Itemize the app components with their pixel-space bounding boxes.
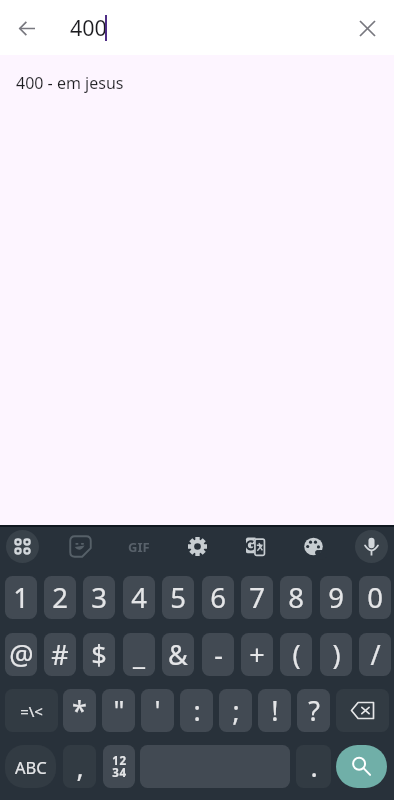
button[interactable]: 6 <box>202 576 234 619</box>
button[interactable]: ( <box>280 633 312 676</box>
staticText: GIF <box>128 538 150 556</box>
button[interactable]: 5 <box>162 576 194 619</box>
button[interactable]: ) <box>320 633 352 676</box>
staticText: 12 34 <box>112 753 127 781</box>
button[interactable]: Stickers <box>64 530 97 563</box>
staticText: ( <box>292 636 301 673</box>
button[interactable]: Theme <box>297 530 330 563</box>
button[interactable]: * <box>63 689 96 732</box>
button[interactable]: $ <box>83 633 115 676</box>
button[interactable]: / <box>359 633 391 676</box>
button[interactable]: : <box>180 689 213 732</box>
staticText: ? <box>308 692 320 729</box>
staticText: 400 - em jesus <box>16 72 124 94</box>
button[interactable]: Back <box>5 6 49 50</box>
button[interactable]: Settings <box>181 530 214 563</box>
staticText: : <box>193 692 201 729</box>
staticText: " <box>113 692 125 729</box>
staticText: @ <box>9 636 34 673</box>
button[interactable]: Apps <box>6 530 39 563</box>
button[interactable]: Voice input <box>355 530 388 563</box>
button[interactable]: + <box>241 633 273 676</box>
button[interactable]: Backspace <box>336 689 389 732</box>
staticText: ) <box>332 636 341 673</box>
button[interactable]: ; <box>219 689 252 732</box>
button[interactable]: , <box>63 745 96 788</box>
button[interactable]: 4 <box>123 576 155 619</box>
staticText: 1 <box>13 579 29 616</box>
button[interactable]: Search <box>336 745 387 788</box>
staticText: =\< <box>20 701 43 721</box>
button[interactable]: Translate <box>239 530 272 563</box>
button[interactable]: Letters <box>5 745 56 788</box>
button[interactable]: @ <box>5 633 37 676</box>
button[interactable]: ! <box>258 689 291 732</box>
staticText: 2 <box>52 579 68 616</box>
button[interactable]: ' <box>141 689 174 732</box>
button[interactable]: 0 <box>359 576 391 619</box>
staticText: . <box>310 748 318 785</box>
staticText: ABC <box>15 756 47 778</box>
staticText: ' <box>154 692 161 729</box>
staticText: & <box>168 636 188 673</box>
staticText: 9 <box>328 579 344 616</box>
button[interactable]: 8 <box>280 576 312 619</box>
button[interactable]: =\< <box>5 689 58 732</box>
staticText: 8 <box>288 579 304 616</box>
button[interactable]: GIF <box>122 530 155 563</box>
staticText: - <box>214 636 223 673</box>
staticText: 5 <box>170 579 186 616</box>
button[interactable]: & <box>162 633 194 676</box>
button[interactable]: 2 <box>44 576 76 619</box>
staticText: 400 <box>70 13 107 42</box>
button[interactable]: _ <box>123 633 155 676</box>
staticText: ; <box>232 692 240 729</box>
staticText: + <box>249 636 265 673</box>
button[interactable]: . <box>296 745 331 788</box>
staticText: # <box>51 636 69 673</box>
staticText: ! <box>271 692 279 729</box>
button[interactable]: " <box>102 689 135 732</box>
staticText: $ <box>91 636 107 673</box>
button[interactable]: 1 <box>5 576 37 619</box>
staticText: 6 <box>210 579 226 616</box>
button[interactable]: ? <box>297 689 330 732</box>
button[interactable]: 12 34 <box>103 745 135 788</box>
staticText: _ <box>133 636 145 673</box>
staticText: 7 <box>249 579 265 616</box>
staticText: 4 <box>131 579 147 616</box>
staticText: * <box>72 692 87 729</box>
button[interactable]: 9 <box>320 576 352 619</box>
staticText: 3 <box>91 579 107 616</box>
button[interactable]: 7 <box>241 576 273 619</box>
button[interactable]: 3 <box>83 576 115 619</box>
button[interactable]: # <box>44 633 76 676</box>
button[interactable]: Clear search <box>345 6 389 50</box>
staticText: / <box>370 636 381 673</box>
button[interactable]: - <box>202 633 234 676</box>
staticText: , <box>76 748 84 785</box>
staticText: 0 <box>367 579 383 616</box>
